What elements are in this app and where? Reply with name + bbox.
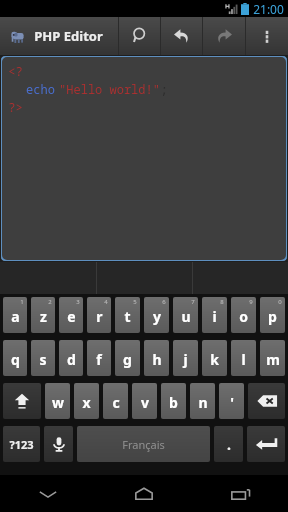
staticText: k [210,350,219,369]
button[interactable]: f [87,340,111,376]
staticText: l [241,350,246,369]
button[interactable]: j [173,340,198,376]
button[interactable]: Voice input [44,426,73,462]
staticText: q [11,350,20,369]
button[interactable]: 1 [3,297,27,333]
button[interactable]: x [74,383,99,419]
button[interactable]: d [59,340,83,376]
button[interactable]: Hide keyboard [0,475,96,512]
staticText: c [112,393,120,412]
staticText: o [239,307,248,326]
button[interactable]: 0 [260,297,285,333]
staticText: a [11,307,20,326]
staticText: p [268,307,277,326]
button[interactable]: Redo [203,17,245,55]
button[interactable]: Recent apps [192,475,288,512]
staticText: 3 [76,298,80,306]
staticText: ; [160,81,168,97]
staticText: v [141,393,149,412]
staticText: r [96,307,103,326]
staticText: echo [22,81,59,97]
staticText: w [52,393,64,412]
button[interactable]: 7 [173,297,198,333]
button[interactable]: Shift [3,383,41,419]
button[interactable]: . [214,426,243,462]
staticText: 8 [220,298,224,306]
button[interactable]: PHP Editor [0,17,118,55]
button[interactable]: More options [246,17,288,55]
button[interactable]: q [3,340,27,376]
button[interactable]: 4 [87,297,111,333]
button[interactable]: Home [96,475,192,512]
staticText: h [152,350,162,369]
button[interactable]: v [132,383,157,419]
button[interactable]: g [115,340,140,376]
button[interactable]: k [202,340,227,376]
staticText: s [39,350,47,369]
staticText: 1 [20,298,24,306]
staticText: ' [230,393,234,412]
button[interactable]: ' [219,383,244,419]
button[interactable]: Backspace [248,383,285,419]
button[interactable]: w [45,383,70,419]
button[interactable]: 8 [202,297,227,333]
button[interactable]: 2 [31,297,55,333]
button[interactable]: Undo [161,17,202,55]
staticText: y [153,307,161,326]
staticText: "Hello world!" [59,81,160,97]
staticText: t [124,307,131,326]
staticText: 5 [133,298,137,306]
staticText: x [82,393,91,412]
staticText: b [169,393,178,412]
staticText: z [40,307,47,326]
staticText: ?> [8,99,23,115]
staticText: j [183,350,188,369]
button[interactable]: c [103,383,128,419]
staticText: . [227,435,231,454]
staticText: e [67,307,76,326]
staticText: Français [122,437,165,452]
staticText: 21:00 [253,1,284,17]
button[interactable]: l [231,340,256,376]
staticText: n [198,393,208,412]
staticText: m [266,350,280,369]
button[interactable]: s [31,340,55,376]
staticText: f [96,350,102,369]
staticText: i [212,307,217,326]
button[interactable]: 9 [231,297,256,333]
staticText: u [181,307,191,326]
button[interactable]: 3 [59,297,83,333]
button[interactable]: b [161,383,186,419]
staticText: <? [8,63,23,79]
button[interactable]: m [260,340,285,376]
staticText: 4 [104,298,108,306]
staticText: 6 [162,298,166,306]
button[interactable]: h [144,340,169,376]
staticText: 9 [249,298,253,306]
staticText: 2 [48,298,52,306]
button[interactable]: n [190,383,215,419]
staticText: 7 [191,298,195,306]
button[interactable]: 5 [115,297,140,333]
staticText: 0 [278,298,282,306]
staticText: g [123,350,132,369]
button[interactable]: ?123 [3,426,40,462]
staticText: ?123 [9,437,34,452]
button[interactable]: Search [119,17,160,55]
staticText: d [67,350,76,369]
button[interactable]: Français [77,426,210,462]
button[interactable]: <? [1,56,287,261]
staticText: PHP Editor [34,27,103,45]
button[interactable]: Enter [247,426,285,462]
button[interactable]: 6 [144,297,169,333]
